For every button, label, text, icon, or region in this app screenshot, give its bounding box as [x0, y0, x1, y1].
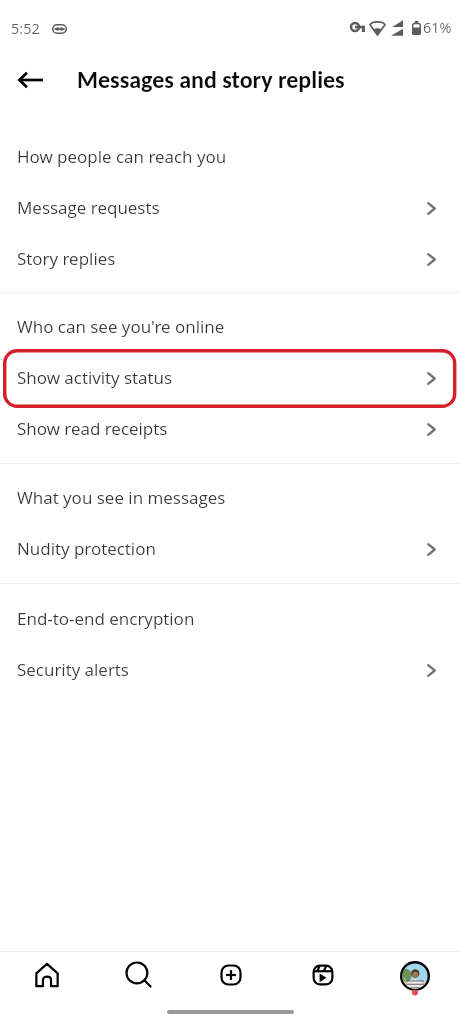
staticText: Story replies [17, 247, 116, 270]
button[interactable]: Back [6, 56, 54, 104]
staticText: End-to-end encryption [17, 607, 195, 630]
staticText: Who can see you're online [17, 315, 225, 338]
button[interactable]: Reels [277, 952, 369, 999]
button[interactable]: Security alerts [0, 644, 461, 695]
button[interactable]: Profile [369, 952, 461, 999]
staticText: Messages and story replies [77, 65, 345, 94]
staticText: Show read receipts [17, 417, 168, 440]
staticText: 61% [423, 18, 452, 38]
button[interactable]: Search [93, 952, 185, 999]
button[interactable]: Nudity protection [0, 523, 461, 574]
staticText: Security alerts [17, 658, 129, 681]
button[interactable]: Home [0, 952, 93, 999]
staticText: How people can reach you [17, 145, 227, 168]
button[interactable]: Create [185, 952, 277, 999]
staticText: Message requests [17, 196, 160, 219]
staticText: Show activity status [17, 366, 173, 389]
button[interactable]: Message requests [0, 182, 461, 233]
button[interactable]: Show activity status [0, 352, 461, 403]
staticText: Nudity protection [17, 537, 156, 560]
button[interactable]: Story replies [0, 233, 461, 284]
staticText: What you see in messages [17, 486, 226, 509]
staticText: 5:52 [11, 19, 40, 39]
button[interactable]: Show read receipts [0, 403, 461, 454]
